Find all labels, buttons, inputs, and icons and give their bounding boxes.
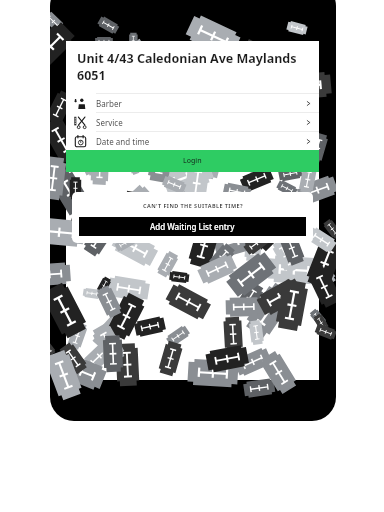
staticText: CAN'T FIND THE SUITABLE TIME? xyxy=(143,202,243,209)
other: Service xyxy=(74,116,87,129)
staticText: Service xyxy=(96,117,123,128)
other: Date and time xyxy=(74,135,87,148)
button[interactable]: Barber xyxy=(66,93,319,112)
staticText: Barber xyxy=(96,98,122,109)
staticText: Unit 4/43 Caledonian Ave Maylands 6051 xyxy=(77,50,297,83)
staticText: Date and time xyxy=(96,136,150,147)
other: Barber xyxy=(74,97,87,110)
button[interactable]: Service xyxy=(66,112,319,131)
button[interactable]: Date and time xyxy=(66,131,319,150)
staticText: Login xyxy=(183,156,202,166)
staticText: Add Waiting List entry xyxy=(150,221,235,232)
button[interactable]: Login xyxy=(66,150,319,172)
button[interactable]: Add Waiting List entry xyxy=(79,217,306,236)
